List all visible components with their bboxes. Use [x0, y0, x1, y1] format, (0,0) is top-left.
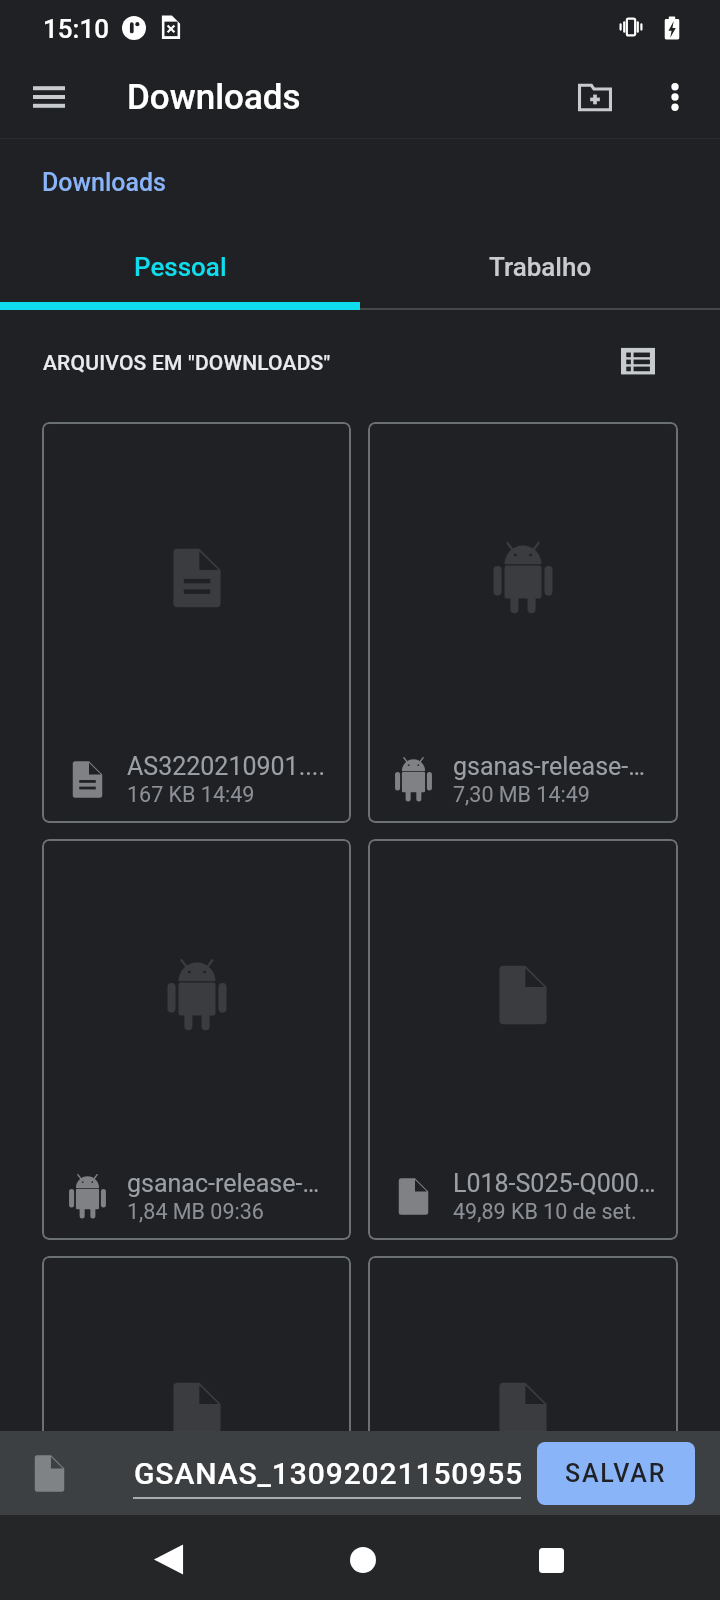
button[interactable]: gsanac-release-… — [42, 839, 351, 1240]
staticText: L018-S025-Q000… — [453, 1169, 656, 1198]
staticText: SALVAR — [565, 1459, 667, 1488]
staticText: gsanac-release-… — [127, 1169, 320, 1198]
staticText: 49,89 KB 10 de set. — [453, 1199, 637, 1224]
staticText: Pessoal — [134, 252, 227, 282]
staticText: 15:10 — [43, 14, 109, 44]
button[interactable]: New folder — [566, 68, 624, 126]
staticText: GSANAS_13092021150955 — [134, 1456, 521, 1491]
button[interactable]: Back — [128, 1518, 208, 1598]
staticText: 167 KB 14:49 — [127, 782, 255, 807]
button[interactable]: Home — [320, 1518, 400, 1598]
staticText: AS3220210901.... — [127, 752, 326, 781]
button[interactable]: L018-S025-Q000… — [368, 839, 678, 1240]
button[interactable]: Pessoal — [0, 226, 360, 308]
staticText: Downloads — [127, 77, 301, 118]
staticText: 7,30 MB 14:49 — [453, 782, 590, 807]
button[interactable]: gsanas-release-… — [368, 422, 678, 823]
button[interactable]: More options — [646, 68, 704, 126]
button[interactable]: Trabalho — [360, 226, 720, 308]
button[interactable]: List view — [611, 334, 665, 388]
button[interactable]: SALVAR — [537, 1442, 695, 1505]
staticText: 1,84 MB 09:36 — [127, 1199, 264, 1224]
button[interactable] — [42, 1256, 351, 1600]
button[interactable]: AS3220210901.... — [42, 422, 351, 823]
button[interactable]: Downloads — [42, 168, 166, 197]
staticText: Trabalho — [489, 252, 592, 282]
button[interactable] — [368, 1256, 678, 1600]
button[interactable]: Show roots — [20, 68, 78, 126]
staticText: gsanas-release-… — [453, 752, 645, 781]
staticText: ARQUIVOS EM "DOWNLOADS" — [43, 351, 331, 376]
button[interactable]: Recents — [511, 1518, 591, 1598]
